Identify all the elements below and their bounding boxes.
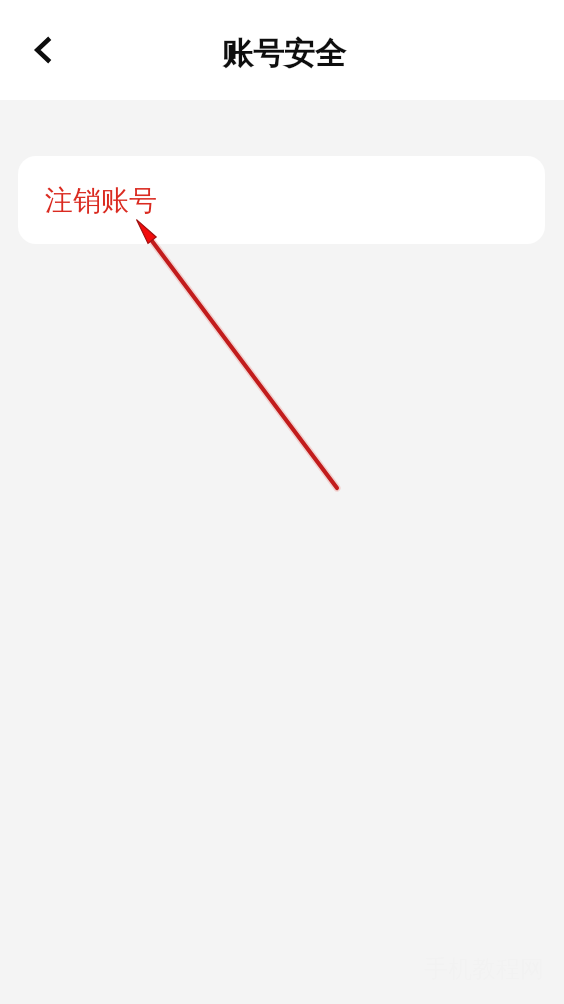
staticText: 注销账号 [45, 183, 157, 218]
staticText: 账号安全 [222, 34, 346, 73]
button[interactable]: Back [21, 28, 65, 72]
button[interactable]: 注销账号 [18, 156, 545, 244]
